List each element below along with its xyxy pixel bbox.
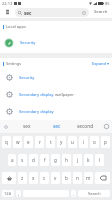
staticText: u [71, 139, 74, 145]
button[interactable]: Clear search [81, 10, 87, 16]
button[interactable]: Expand [88, 58, 112, 69]
staticText: . [73, 191, 75, 197]
button[interactable]: Secondary display [0, 86, 112, 103]
button[interactable]: m [84, 172, 93, 184]
staticText: Search [88, 191, 101, 196]
button[interactable]: i [79, 136, 88, 148]
button[interactable]: Emoji [100, 120, 112, 133]
button[interactable]: . [71, 190, 76, 197]
button[interactable]: z [18, 172, 27, 184]
button[interactable]: sec [15, 8, 89, 17]
staticText: f [44, 157, 46, 163]
staticText: m [86, 175, 91, 181]
button[interactable]: Security [0, 32, 112, 53]
staticText: x [32, 175, 35, 181]
staticText: z [21, 175, 24, 181]
button[interactable]: e [24, 136, 33, 148]
button[interactable]: t [46, 136, 55, 148]
button[interactable]: Search [89, 6, 112, 18]
staticText: wallpaper [54, 92, 75, 98]
button[interactable]: g [51, 154, 60, 166]
staticText: k [87, 157, 90, 163]
staticText: Settings [6, 61, 22, 66]
staticText: t [50, 139, 52, 145]
staticText: Secondary display [19, 109, 54, 115]
staticText: sec [24, 10, 32, 16]
staticText: b [65, 175, 68, 181]
button[interactable]: Keyboard settings [0, 120, 12, 133]
button[interactable]: w [13, 136, 22, 148]
staticText: Secondary display [19, 92, 54, 98]
staticText: Security [20, 40, 36, 46]
staticText: y [60, 139, 63, 145]
button[interactable]: o [90, 136, 99, 148]
staticText: Expand [92, 61, 106, 66]
button[interactable]: s [18, 154, 27, 166]
staticText: sec [53, 123, 61, 130]
staticText: v [54, 175, 57, 181]
staticText: w [16, 139, 20, 145]
button[interactable]: sex [12, 120, 42, 133]
button[interactable]: Navigation menu [0, 6, 15, 18]
staticText: c [43, 175, 46, 181]
staticText: g [54, 157, 57, 163]
staticText: i [83, 139, 85, 145]
staticText: o [93, 139, 96, 145]
staticText: Security [19, 75, 35, 81]
button[interactable]: Search [78, 190, 110, 197]
button[interactable]: n [73, 172, 82, 184]
staticText: 22:13 [2, 1, 13, 6]
button[interactable]: sec [42, 120, 71, 133]
button[interactable]: k [84, 154, 93, 166]
button[interactable]: second [71, 120, 100, 133]
staticText: a [11, 157, 14, 163]
staticText: 85 [105, 1, 110, 6]
button[interactable]: y [57, 136, 66, 148]
button[interactable]: j [73, 154, 82, 166]
button[interactable]: c [40, 172, 49, 184]
button[interactable]: u [68, 136, 77, 148]
button[interactable]: f [40, 154, 49, 166]
button[interactable]: h [62, 154, 71, 166]
staticText: Local apps [6, 24, 26, 29]
staticText: n [76, 175, 79, 181]
button[interactable]: a [8, 154, 16, 166]
staticText: Search [94, 9, 108, 15]
button[interactable]: v [51, 172, 60, 184]
staticText: p [104, 139, 107, 145]
staticText: l [99, 157, 101, 163]
staticText: e [27, 139, 30, 145]
button[interactable]: r [35, 136, 44, 148]
button[interactable]: d [29, 154, 38, 166]
button[interactable]: l [95, 154, 104, 166]
button[interactable]: q [2, 136, 11, 148]
staticText: sex [23, 123, 31, 130]
staticText: , [18, 191, 20, 197]
button[interactable]: Backspace [95, 172, 110, 184]
staticText: j [77, 157, 79, 163]
button[interactable]: x [29, 172, 38, 184]
staticText: h [65, 157, 68, 163]
button[interactable]: b [62, 172, 71, 184]
staticText: s [21, 157, 24, 163]
staticText: r [39, 139, 41, 145]
button[interactable]: Shift [2, 172, 16, 184]
staticText: q [5, 139, 8, 145]
staticText: 12# [4, 191, 12, 196]
staticText: d [32, 157, 35, 163]
button[interactable]: Secondary display [0, 103, 112, 120]
button[interactable]: p [101, 136, 110, 148]
button[interactable]: Security [0, 69, 112, 86]
staticText: second [77, 123, 94, 130]
button[interactable]: 12# [2, 190, 14, 197]
button[interactable]: , [16, 190, 21, 197]
